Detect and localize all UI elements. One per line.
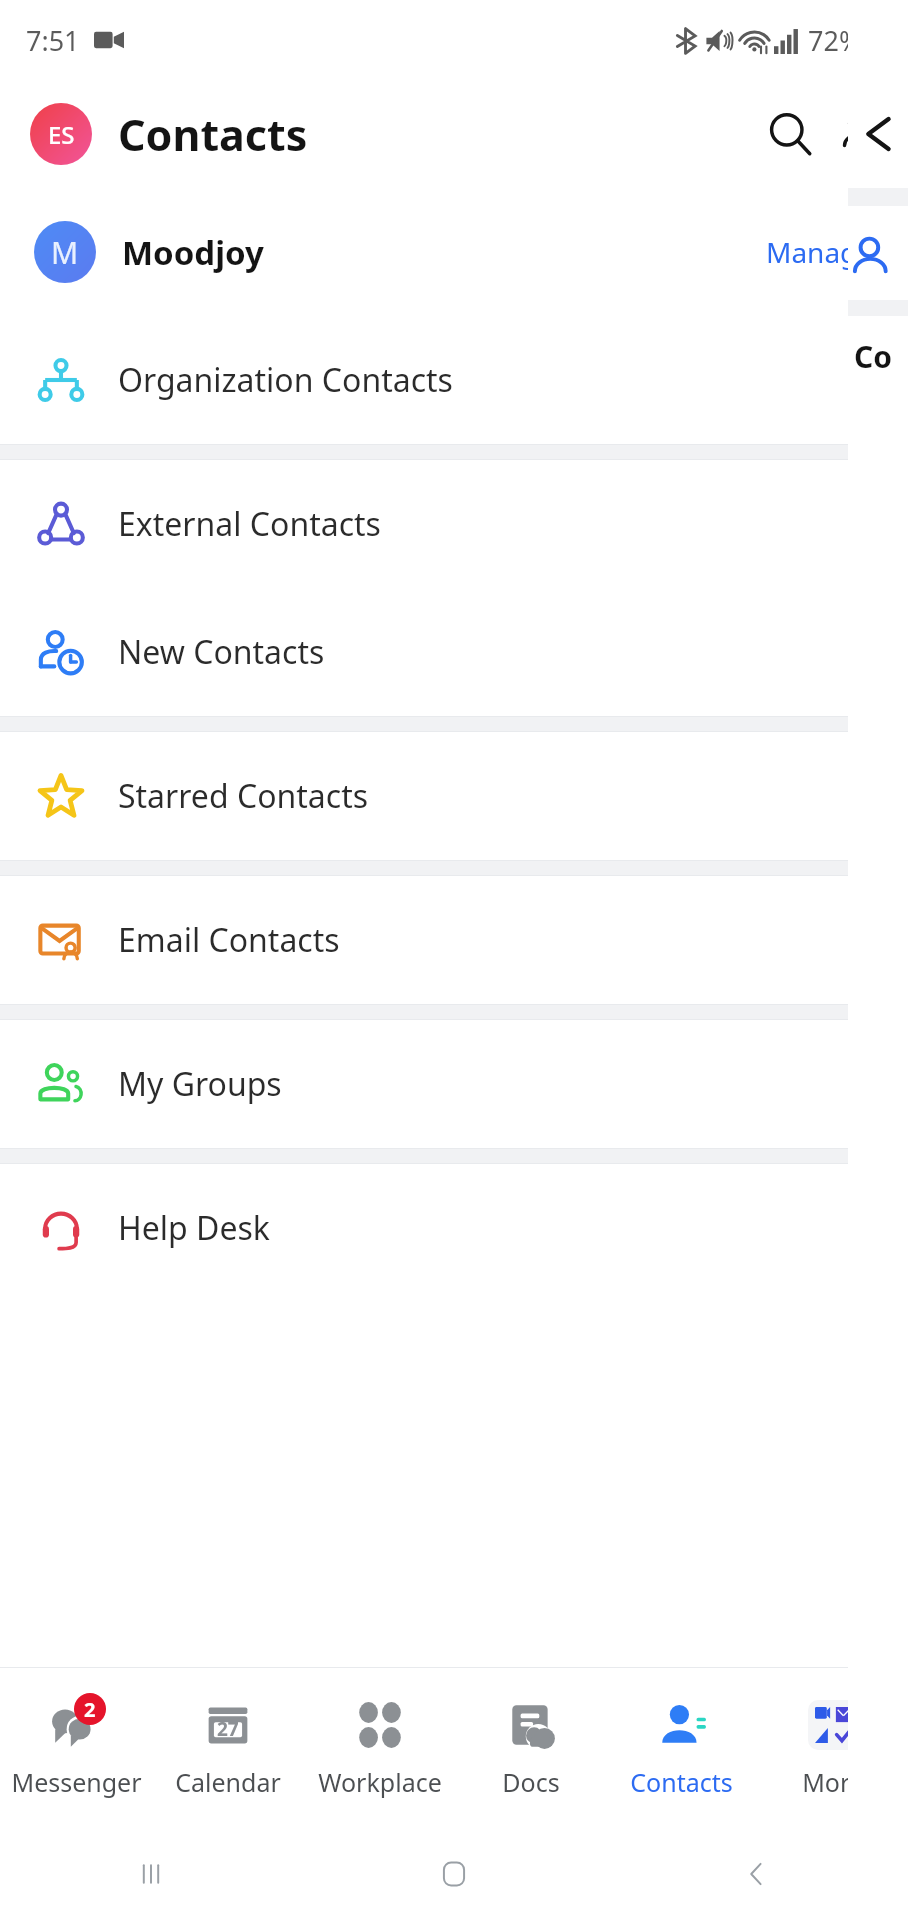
- button[interactable]: Search: [754, 98, 826, 170]
- button[interactable]: 2: [0, 1668, 152, 1828]
- staticText: Email Contacts: [118, 918, 340, 962]
- staticText: 27: [217, 1716, 239, 1742]
- button[interactable]: Home: [302, 1828, 605, 1920]
- staticText: 7:51: [26, 22, 80, 59]
- staticText: Docs: [502, 1765, 560, 1799]
- staticText: New Contacts: [118, 630, 325, 674]
- staticText: Starred Contacts: [118, 774, 369, 818]
- staticText: Manage: [766, 233, 874, 271]
- staticText: ES: [48, 118, 75, 151]
- button[interactable]: 27: [152, 1668, 304, 1828]
- button[interactable]: Add contact: [826, 98, 898, 170]
- button[interactable]: Starred Contacts: [0, 732, 908, 860]
- button[interactable]: More: [757, 1668, 908, 1828]
- button[interactable]: Organization Contacts: [0, 316, 908, 444]
- button[interactable]: Contacts: [606, 1668, 757, 1828]
- staticText: Workplace: [318, 1765, 442, 1799]
- staticText: Contacts: [630, 1765, 733, 1799]
- staticText: Moodjoy: [122, 230, 264, 275]
- button[interactable]: New Contacts: [0, 588, 908, 716]
- button[interactable]: Email Contacts: [0, 876, 908, 1004]
- staticText: Co: [854, 336, 893, 377]
- staticText: 72%: [808, 22, 862, 59]
- button[interactable]: Back: [605, 1828, 908, 1920]
- staticText: Calendar: [175, 1765, 281, 1799]
- staticText: Contacts: [118, 105, 308, 164]
- button[interactable]: Docs: [455, 1668, 606, 1828]
- button[interactable]: Help Desk: [0, 1164, 908, 1292]
- button[interactable]: My Groups: [0, 1020, 908, 1148]
- button[interactable]: ES: [30, 103, 92, 165]
- staticText: More: [802, 1765, 864, 1799]
- staticText: Messenger: [11, 1765, 142, 1799]
- staticText: 2: [84, 1696, 96, 1723]
- staticText: My Groups: [118, 1062, 282, 1106]
- staticText: M: [51, 232, 79, 273]
- button[interactable]: M: [0, 188, 908, 316]
- staticText: Organization Contacts: [118, 358, 453, 402]
- staticText: Help Desk: [118, 1206, 270, 1250]
- button[interactable]: Workplace: [304, 1668, 455, 1828]
- button[interactable]: External Contacts: [0, 460, 908, 588]
- button[interactable]: Recent apps: [0, 1828, 302, 1920]
- staticText: External Contacts: [118, 502, 381, 546]
